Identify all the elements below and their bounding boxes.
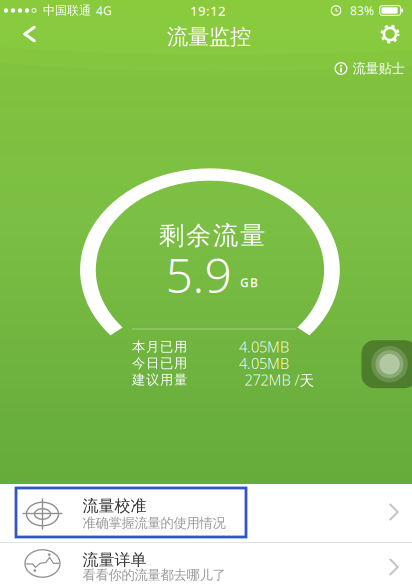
staticText: 流量详单 — [82, 550, 146, 570]
staticText: G B — [240, 274, 258, 290]
staticText: 83% — [350, 2, 374, 18]
staticText: 看看你的流量都去哪儿了 — [82, 567, 225, 583]
staticText: 流量校准 — [82, 496, 146, 516]
staticText: 19:12 — [190, 2, 226, 19]
staticText: 剩 余 流 量 — [159, 220, 265, 251]
staticText: 4G — [96, 2, 112, 18]
staticText: 流量监控 — [167, 24, 251, 50]
button[interactable]: 流量详单 — [0, 543, 412, 587]
button[interactable]: 流量校准 — [0, 484, 412, 542]
staticText: 272MB /天 — [244, 370, 314, 390]
staticText: 5.9 — [165, 243, 231, 306]
button[interactable]: 流量贴士 — [335, 60, 404, 77]
staticText: 本 月 已 用 — [132, 338, 187, 355]
staticText: 中国联通 — [43, 3, 91, 18]
button[interactable]: Back — [9, 14, 49, 54]
button[interactable]: AssistiveTouch — [361, 340, 412, 388]
button[interactable]: Settings — [370, 14, 410, 54]
staticText: 今 日 已 用 — [132, 355, 187, 371]
staticText: 4.05MB — [239, 337, 289, 356]
staticText: 流量贴士 — [352, 60, 404, 77]
staticText: 准确掌握流量的使用情况 — [82, 515, 225, 531]
staticText: 建 议 用 量 — [132, 372, 187, 388]
staticText: 4.05MB — [239, 353, 289, 373]
